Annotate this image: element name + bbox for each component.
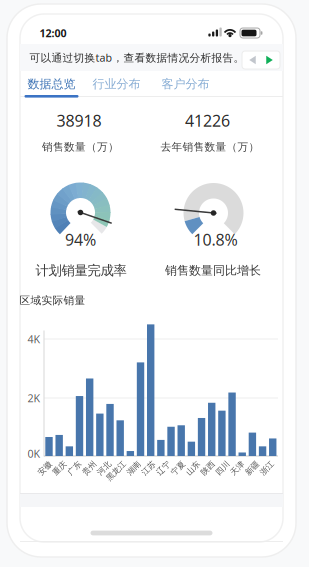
staticText: 数据总览: [27, 77, 75, 91]
staticText: 河北: [96, 463, 112, 473]
staticText: 94%: [65, 229, 96, 250]
staticText: 天津: [229, 463, 245, 473]
staticText: 行业分布: [92, 77, 140, 91]
staticText: 贵州: [81, 463, 97, 473]
staticText: 销售数量（万）: [42, 140, 119, 153]
button[interactable]: 数据总览: [19, 71, 83, 97]
staticText: 客户分布: [161, 77, 209, 91]
staticText: 0K: [27, 446, 40, 461]
staticText: 销售数量同比增长: [165, 263, 261, 278]
staticText: 41226: [185, 110, 230, 131]
staticText: 2K: [27, 391, 40, 405]
staticText: 4K: [27, 332, 40, 346]
staticText: 四川: [215, 463, 231, 473]
button[interactable]: 客户分布: [153, 71, 217, 97]
staticText: 计划销量完成率: [35, 262, 126, 279]
staticText: 山东: [185, 463, 201, 473]
staticText: 安徽: [37, 463, 53, 473]
button[interactable]: 行业分布: [84, 71, 148, 97]
staticText: 陕西: [200, 463, 216, 473]
staticText: 浙江: [259, 463, 275, 473]
staticText: 广东: [66, 463, 82, 473]
staticText: 38918: [56, 110, 101, 131]
staticText: 区域实际销量: [19, 294, 85, 307]
staticText: 重庆: [52, 463, 68, 473]
staticText: 可以通过切换tab，查看数据情况分析报告。: [29, 50, 244, 65]
staticText: 新疆: [244, 463, 260, 473]
button[interactable]: 上一页/下一页: [242, 51, 280, 69]
staticText: 10.8%: [193, 229, 237, 250]
staticText: 黑龙江: [104, 466, 128, 476]
staticText: 宁夏: [170, 463, 186, 473]
staticText: 湖南: [126, 463, 142, 473]
staticText: 辽宁: [155, 463, 171, 473]
staticText: 12:00: [39, 26, 66, 40]
staticText: 去年销售数量（万）: [160, 140, 259, 153]
staticText: 江苏: [140, 463, 156, 473]
